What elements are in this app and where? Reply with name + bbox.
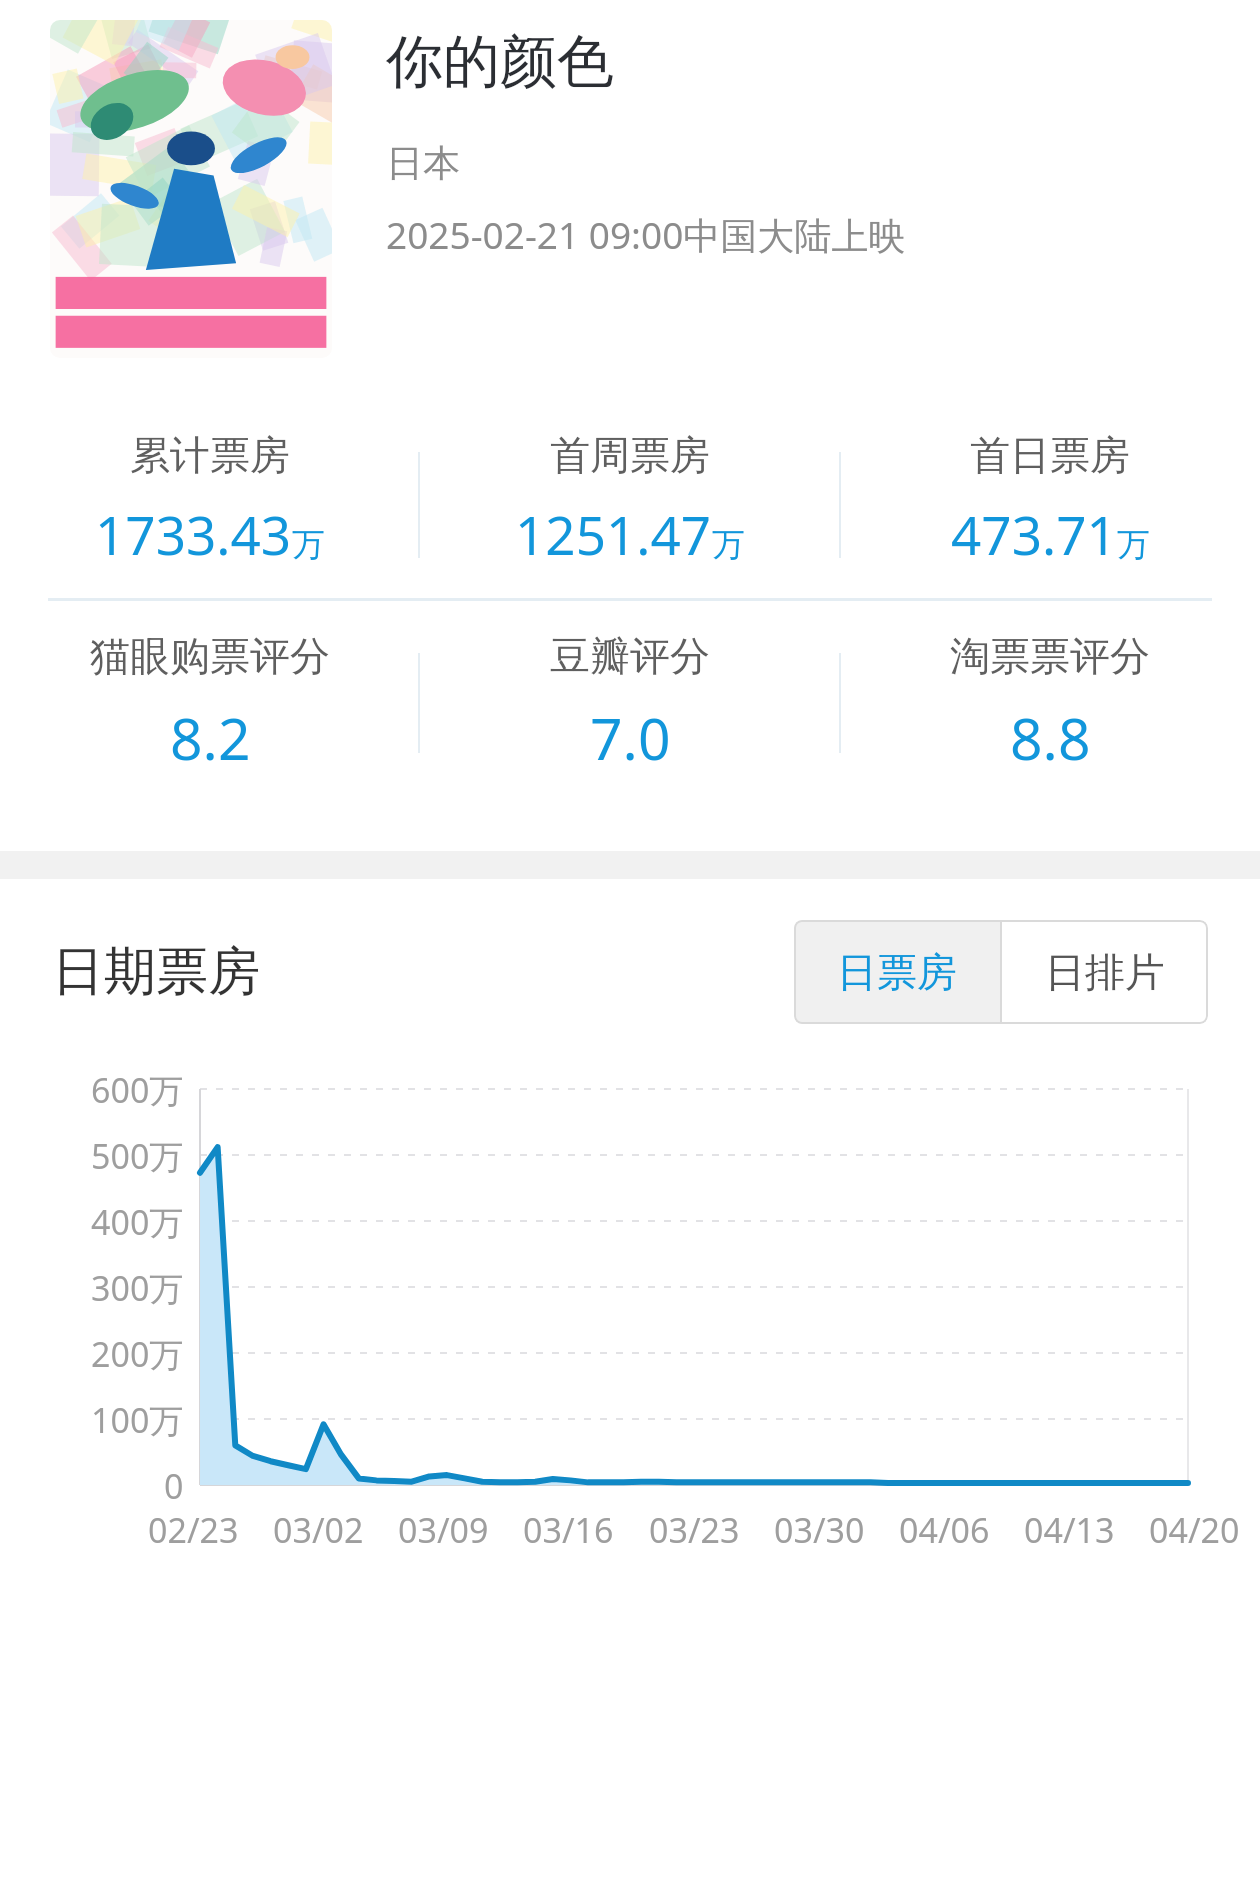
staticText: 03/16: [523, 1507, 614, 1553]
button[interactable]: 日排片: [1002, 920, 1208, 1024]
staticText: 300万: [91, 1265, 184, 1311]
staticText: 日票房: [837, 947, 957, 997]
staticText: 首周票房: [550, 430, 710, 480]
staticText: 万: [1117, 524, 1150, 565]
button[interactable]: 累计票房: [0, 430, 420, 570]
staticText: 日本: [386, 140, 460, 187]
staticText: 500万: [91, 1133, 184, 1179]
staticText: 1251.47: [515, 498, 712, 570]
staticText: 473.71: [951, 498, 1117, 570]
staticText: 7.0: [590, 699, 671, 777]
staticText: 累计票房: [130, 430, 290, 480]
staticText: 100万: [91, 1397, 184, 1443]
staticText: 04/20: [1149, 1507, 1240, 1553]
staticText: 猫眼购票评分: [90, 631, 330, 681]
staticText: 200万: [91, 1331, 184, 1377]
staticText: 日期票房: [52, 939, 260, 1005]
staticText: 03/30: [774, 1507, 865, 1553]
button[interactable]: 日票房: [794, 920, 1000, 1024]
staticText: 8.2: [170, 699, 251, 777]
staticText: 豆瓣评分: [550, 631, 710, 681]
staticText: 首日票房: [970, 430, 1130, 480]
staticText: 万: [712, 524, 745, 565]
button[interactable]: 首周票房: [420, 430, 840, 570]
staticText: 0: [164, 1463, 184, 1509]
button[interactable]: 淘票票评分: [840, 631, 1260, 777]
staticText: 400万: [91, 1199, 184, 1245]
staticText: 你的颜色: [386, 26, 614, 98]
staticText: 2025-02-21 09:00中国大陆上映: [386, 209, 906, 260]
button[interactable]: 首日票房: [840, 430, 1260, 570]
staticText: 淘票票评分: [950, 631, 1150, 681]
button[interactable]: 豆瓣评分: [420, 631, 840, 777]
staticText: 02/23: [148, 1507, 239, 1553]
staticText: 03/02: [273, 1507, 364, 1553]
staticText: 8.8: [1010, 699, 1091, 777]
staticText: 日排片: [1045, 947, 1165, 997]
staticText: 03/23: [649, 1507, 740, 1553]
staticText: 03/09: [398, 1507, 489, 1553]
staticText: 04/13: [1024, 1507, 1115, 1553]
button[interactable]: 电影海报: [50, 20, 332, 358]
staticText: 万: [292, 524, 325, 565]
staticText: 04/06: [899, 1507, 990, 1553]
staticText: 600万: [91, 1067, 184, 1113]
button[interactable]: 猫眼购票评分: [0, 631, 420, 777]
staticText: 1733.43: [95, 498, 292, 570]
